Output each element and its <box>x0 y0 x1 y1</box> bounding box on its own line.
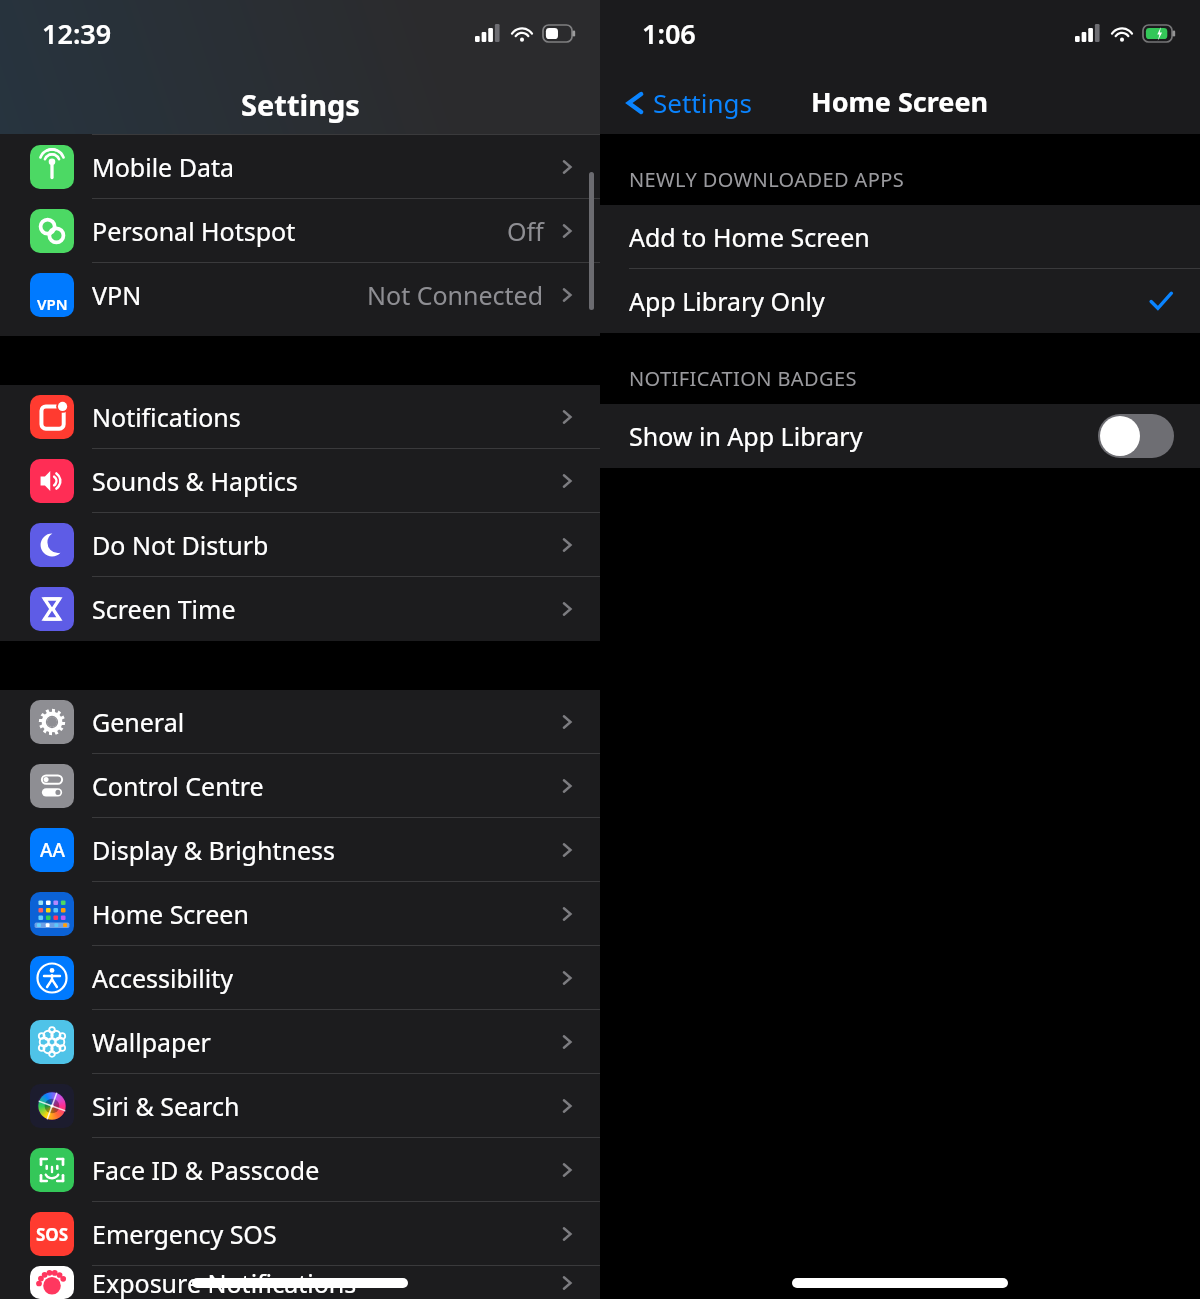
staticText: Add to Home Screen <box>629 220 870 254</box>
staticText: Emergency SOS <box>92 1217 277 1251</box>
button[interactable]: Siri & Search <box>0 1074 600 1138</box>
button[interactable]: Show in App Library <box>600 404 1200 468</box>
staticText: Settings <box>653 85 752 120</box>
staticText: Wallpaper <box>92 1025 211 1059</box>
staticText: Home Screen <box>92 897 249 931</box>
button[interactable]: VPN <box>0 263 600 327</box>
staticText: Display & Brightness <box>92 833 335 867</box>
staticText: Off <box>507 214 544 248</box>
button[interactable]: Show in App Library toggle <box>1098 414 1174 458</box>
staticText: Accessibility <box>92 961 233 995</box>
button[interactable]: App Library Only <box>600 269 1200 333</box>
button[interactable]: Notifications <box>0 385 600 449</box>
staticText: Face ID & Passcode <box>92 1153 320 1187</box>
button[interactable]: Control Centre <box>0 754 600 818</box>
button[interactable]: Face ID & Passcode <box>0 1138 600 1202</box>
staticText: Not Connected <box>367 278 544 312</box>
staticText: VPN <box>92 278 142 312</box>
staticText: VPN <box>37 294 68 314</box>
button[interactable]: Sounds & Haptics <box>0 449 600 513</box>
staticText: Home Screen <box>811 83 989 120</box>
button[interactable]: Screen Time <box>0 577 600 641</box>
staticText: Personal Hotspot <box>92 214 296 248</box>
staticText: General <box>92 705 185 739</box>
staticText: 1:06 <box>642 15 696 52</box>
staticText: NOTIFICATION BADGES <box>629 365 857 392</box>
button[interactable]: Personal Hotspot <box>0 199 600 263</box>
button[interactable]: Do Not Disturb <box>0 513 600 577</box>
staticText: Notifications <box>92 400 241 434</box>
staticText: Sounds & Haptics <box>92 464 298 498</box>
staticText: 12:39 <box>42 15 112 52</box>
staticText: Mobile Data <box>92 150 235 184</box>
button[interactable]: Exposure Notifications <box>0 1266 600 1299</box>
button[interactable]: Accessibility <box>0 946 600 1010</box>
staticText: Siri & Search <box>92 1089 240 1123</box>
staticText: Control Centre <box>92 769 264 803</box>
staticText: Screen Time <box>92 592 236 626</box>
button[interactable]: Wallpaper <box>0 1010 600 1074</box>
button[interactable]: General <box>0 690 600 754</box>
staticText: AA <box>40 837 65 863</box>
staticText: Do Not Disturb <box>92 528 269 562</box>
button[interactable]: AA <box>0 818 600 882</box>
button[interactable]: Mobile Data <box>0 135 600 199</box>
staticText: Settings <box>241 85 360 124</box>
staticText: NEWLY DOWNLOADED APPS <box>629 166 905 193</box>
button[interactable]: Settings <box>618 81 758 124</box>
staticText: App Library Only <box>629 284 825 318</box>
staticText: Show in App Library <box>629 419 863 453</box>
button[interactable]: Home Screen <box>0 882 600 946</box>
button[interactable]: Add to Home Screen <box>600 205 1200 269</box>
button[interactable]: SOS <box>0 1202 600 1266</box>
staticText: SOS <box>36 1223 69 1246</box>
staticText: Exposure Notifications <box>92 1266 357 1299</box>
